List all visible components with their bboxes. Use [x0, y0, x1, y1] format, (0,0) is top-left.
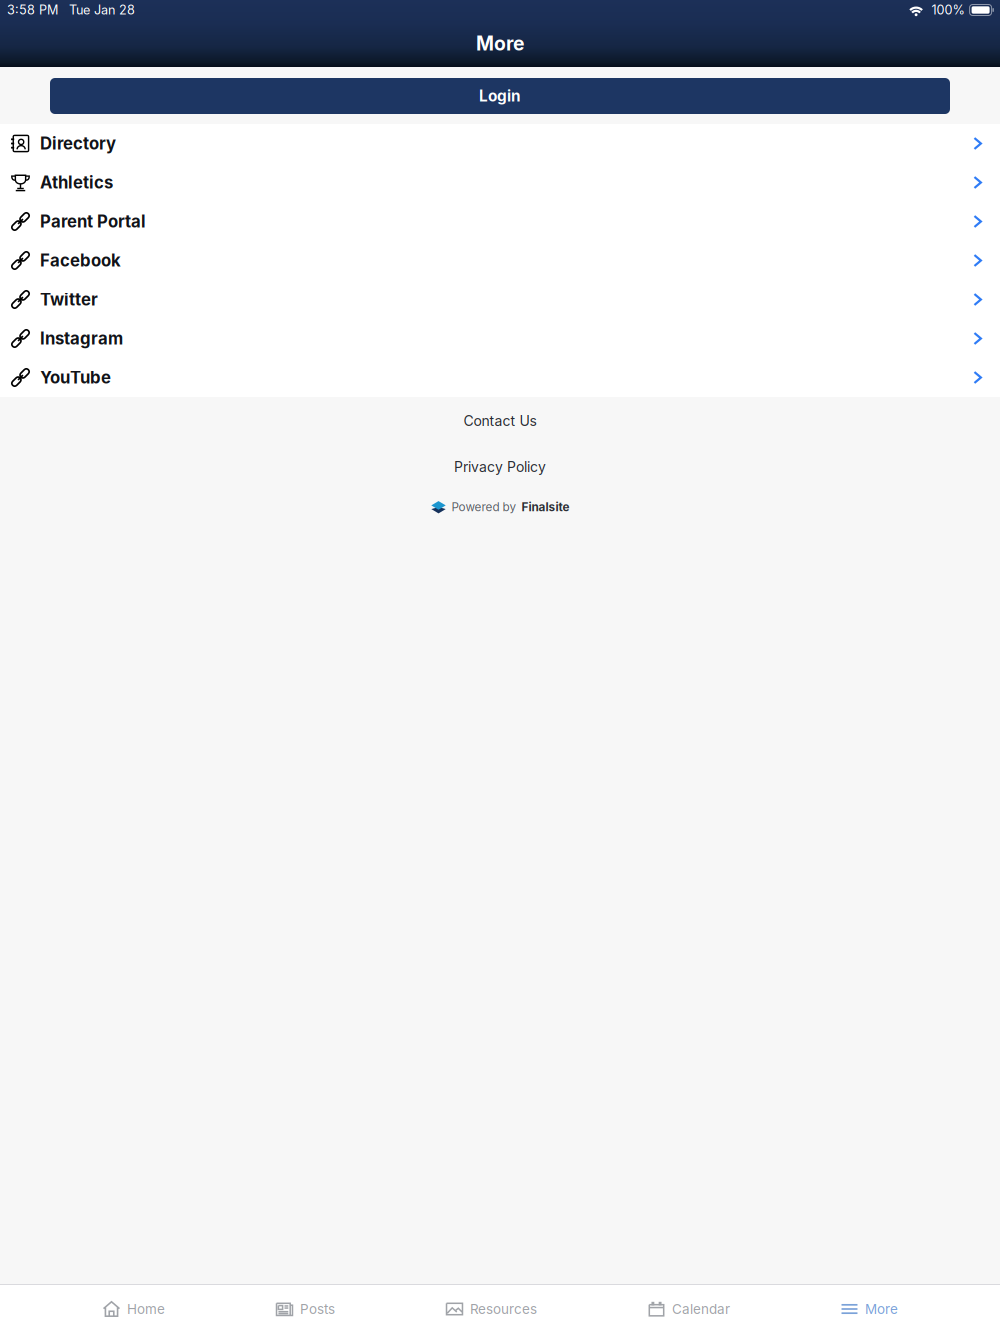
staticText: More: [865, 1301, 898, 1317]
staticText: Resources: [470, 1301, 537, 1317]
staticText: Powered by: [451, 500, 516, 514]
staticText: Login: [479, 87, 521, 105]
staticText: Athletics: [40, 172, 113, 193]
staticText: YouTube: [40, 367, 111, 388]
staticText: 3:58 PM: [7, 2, 58, 18]
button[interactable]: Home: [102, 1284, 165, 1334]
staticText: Finalsite: [521, 500, 569, 514]
staticText: More: [476, 32, 524, 55]
button[interactable]: Directory: [0, 124, 1000, 163]
button[interactable]: Resources: [445, 1284, 537, 1334]
staticText: Parent Portal: [40, 211, 146, 232]
staticText: Directory: [40, 133, 116, 154]
staticText: Facebook: [40, 250, 121, 271]
staticText: Home: [127, 1301, 165, 1317]
staticText: Privacy Policy: [454, 458, 546, 475]
button[interactable]: Posts: [275, 1284, 335, 1334]
button[interactable]: Twitter: [0, 280, 1000, 319]
button[interactable]: Calendar: [647, 1284, 730, 1334]
button[interactable]: Athletics: [0, 163, 1000, 202]
button[interactable]: Parent Portal: [0, 202, 1000, 241]
staticText: Instagram: [40, 328, 123, 349]
button[interactable]: Login: [50, 78, 950, 114]
button[interactable]: Instagram: [0, 319, 1000, 358]
staticText: 100%: [932, 2, 965, 18]
staticText: Contact Us: [463, 412, 536, 429]
button[interactable]: Facebook: [0, 241, 1000, 280]
staticText: Posts: [300, 1301, 335, 1317]
button[interactable]: YouTube: [0, 358, 1000, 397]
staticText: Twitter: [40, 289, 98, 310]
staticText: Calendar: [672, 1301, 730, 1317]
button[interactable]: Privacy Policy: [0, 457, 1000, 477]
button[interactable]: More: [840, 1284, 898, 1334]
staticText: Tue Jan 28: [69, 2, 135, 18]
button[interactable]: Contact Us: [0, 411, 1000, 431]
